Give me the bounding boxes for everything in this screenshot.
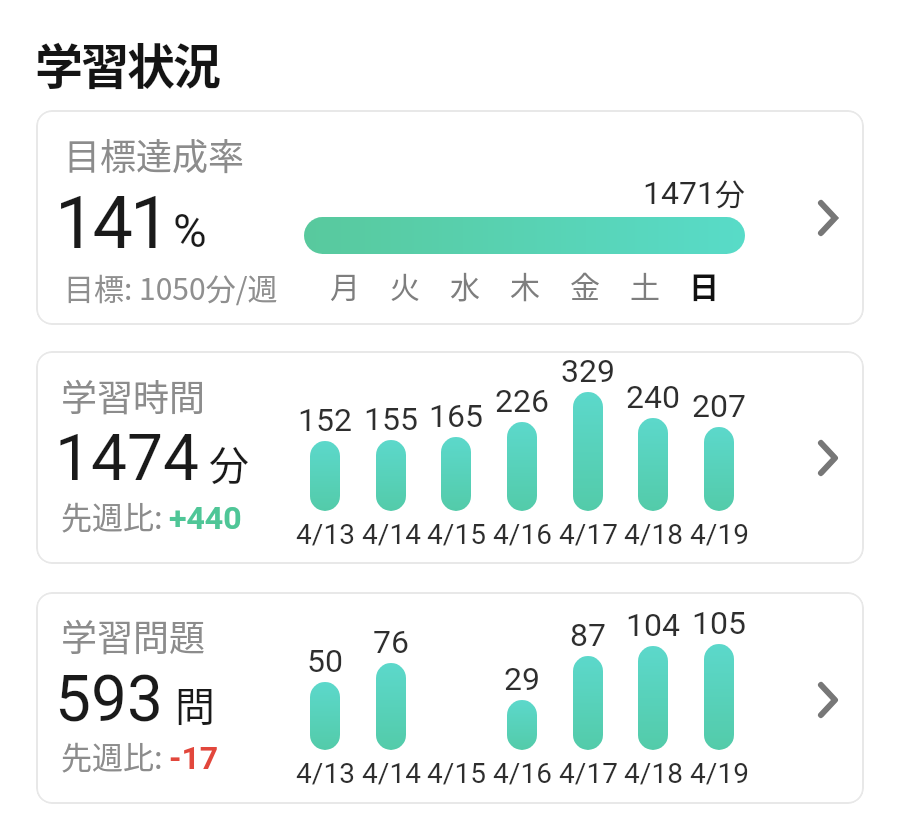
staticText: 木 [510, 263, 540, 306]
staticText: 分 [715, 170, 745, 213]
staticText: 学習時間 [61, 369, 206, 421]
staticText: 金 [570, 263, 600, 306]
staticText: 226 [495, 382, 549, 420]
staticText: 1474 [55, 421, 199, 496]
staticText: 104 [626, 606, 680, 644]
staticText: 目標達成率 [64, 128, 245, 180]
staticText: 4/16 [493, 518, 552, 551]
button[interactable]: 学習時間 [36, 351, 864, 564]
staticText: 165 [429, 397, 483, 435]
staticText: -17 [169, 739, 219, 777]
staticText: 4/13 [296, 518, 355, 551]
staticText: 学習問題 [61, 609, 206, 661]
staticText: 土 [630, 263, 660, 306]
staticText: 火 [390, 263, 420, 306]
staticText: 日 [689, 263, 719, 306]
staticText: 207 [692, 387, 746, 425]
staticText: 87 [570, 616, 606, 654]
button[interactable]: 目標達成率 [36, 110, 864, 325]
staticText: 4/18 [624, 757, 683, 790]
staticText: 4/17 [559, 518, 618, 551]
button[interactable]: 学習問題 [36, 592, 864, 804]
staticText: 593 [55, 662, 163, 737]
staticText: 105 [692, 604, 746, 642]
staticText: 分 [209, 434, 249, 492]
staticText: 先週比: [61, 493, 163, 538]
staticText: 50 [307, 642, 343, 680]
staticText: 29 [504, 660, 540, 698]
staticText: 4/14 [362, 518, 421, 551]
staticText: 4/15 [427, 757, 486, 790]
staticText: 152 [298, 401, 352, 439]
staticText: 先週比: [61, 733, 163, 778]
staticText: 329 [561, 352, 615, 390]
staticText: 141 [55, 181, 168, 265]
staticText: % [173, 204, 207, 258]
staticText: 4/19 [690, 518, 749, 551]
staticText: 4/17 [559, 757, 618, 790]
staticText: 問 [175, 675, 215, 733]
staticText: 1471 [643, 174, 715, 212]
staticText: 240 [626, 378, 680, 416]
staticText: 4/15 [427, 518, 486, 551]
staticText: 学習状況 [35, 28, 220, 98]
staticText: 76 [373, 623, 409, 661]
staticText: +440 [169, 499, 242, 537]
staticText: 月 [330, 263, 360, 306]
staticText: 水 [450, 263, 480, 306]
staticText: 目標: 1050分/週 [64, 265, 278, 308]
staticText: 4/19 [690, 757, 749, 790]
staticText: 155 [364, 400, 418, 438]
staticText: 4/16 [493, 757, 552, 790]
staticText: 4/13 [296, 757, 355, 790]
staticText: 4/18 [624, 518, 683, 551]
staticText: 4/14 [362, 757, 421, 790]
